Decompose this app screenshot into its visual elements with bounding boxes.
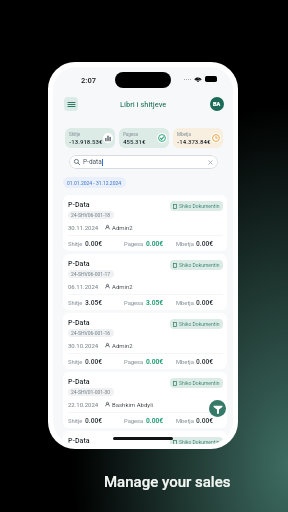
staticText: Pagesa bbox=[124, 300, 144, 307]
staticText: Pagesa bbox=[124, 359, 144, 366]
staticText: Shiko Dokumentin bbox=[179, 321, 220, 327]
staticText: 2:07 bbox=[81, 76, 97, 85]
staticText: 30.10.2024 bbox=[68, 342, 99, 349]
staticText: 0.00€ bbox=[146, 240, 164, 248]
staticText: 24-SHV01-001-30 bbox=[71, 389, 111, 395]
staticText: Mbetja bbox=[176, 300, 194, 307]
button[interactable]: Shiko Dokumentin bbox=[170, 260, 223, 270]
staticText: P-Data bbox=[68, 260, 90, 268]
staticText: 24-SHV06-001-17 bbox=[71, 271, 111, 277]
button[interactable]: Profile bbox=[210, 97, 224, 111]
staticText: 3.05€ bbox=[85, 299, 103, 307]
staticText: Shitje bbox=[68, 418, 83, 425]
button[interactable]: P-Data bbox=[63, 254, 227, 310]
staticText: Pagesa bbox=[124, 241, 144, 248]
button[interactable]: P-Data bbox=[63, 372, 227, 428]
staticText: Manage your sales bbox=[104, 473, 231, 491]
staticText: Shiko Dokumentin bbox=[179, 439, 220, 444]
staticText: Admin2 bbox=[112, 342, 133, 349]
staticText: 0.00€ bbox=[196, 240, 214, 248]
staticText: Mbetja bbox=[176, 359, 194, 366]
button[interactable]: P-Data bbox=[63, 431, 227, 444]
staticText: 0.00€ bbox=[85, 240, 103, 248]
button[interactable]: 01.01.2024 - 31.12.2024 bbox=[63, 177, 126, 188]
staticText: BA bbox=[213, 101, 221, 107]
staticText: 0.00€ bbox=[196, 417, 214, 425]
staticText: Mbetja bbox=[176, 241, 194, 248]
staticText: Libri i shitjeve bbox=[120, 100, 167, 109]
staticText: Shiko Dokumentin bbox=[179, 380, 220, 386]
staticText: 06.11.2024 bbox=[68, 283, 99, 290]
staticText: 01.01.2024 - 31.12.2024 bbox=[67, 180, 122, 186]
staticText: 22.10.2024 bbox=[68, 401, 99, 408]
button[interactable]: Mbetja bbox=[173, 128, 223, 148]
button[interactable]: Shiko Dokumentin bbox=[170, 378, 223, 388]
button[interactable]: Shitje bbox=[65, 128, 115, 148]
staticText: 0.00€ bbox=[196, 299, 214, 307]
staticText: P-Data bbox=[68, 437, 90, 444]
button[interactable]: Menu bbox=[64, 97, 78, 111]
staticText: P-Data bbox=[68, 201, 90, 209]
staticText: Mbetja bbox=[176, 418, 194, 425]
staticText: 0.00€ bbox=[196, 358, 214, 366]
button[interactable]: P-Data bbox=[63, 195, 227, 251]
button[interactable]: Shiko Dokumentin bbox=[170, 437, 223, 444]
staticText: Shitje bbox=[68, 359, 83, 366]
staticText: 3.05€ bbox=[146, 299, 164, 307]
button[interactable]: Shiko Dokumentin bbox=[170, 201, 223, 211]
staticText: Admin2 bbox=[112, 224, 133, 231]
staticText: Bashkim Abdyli bbox=[112, 401, 154, 408]
button[interactable]: Shiko Dokumentin bbox=[170, 319, 223, 329]
staticText: Mbetja bbox=[177, 132, 191, 137]
staticText: -14.373.84€ bbox=[177, 138, 211, 145]
staticText: 455.31€ bbox=[123, 138, 146, 145]
staticText: P-Data bbox=[68, 319, 90, 327]
button[interactable]: Pagesa bbox=[119, 128, 169, 148]
staticText: P-data bbox=[83, 158, 102, 166]
staticText: Pagesa bbox=[124, 418, 144, 425]
staticText: 30.11.2024 bbox=[68, 224, 99, 231]
staticText: Shitje bbox=[68, 300, 83, 307]
staticText: Shitje bbox=[69, 132, 81, 137]
staticText: 0.00€ bbox=[85, 358, 103, 366]
button[interactable]: Filter bbox=[209, 400, 226, 417]
staticText: 0.00€ bbox=[146, 417, 164, 425]
staticText: Admin2 bbox=[112, 283, 133, 290]
staticText: 24-SHV06-001-16 bbox=[71, 330, 111, 336]
staticText: Shiko Dokumentin bbox=[179, 203, 220, 209]
staticText: Shiko Dokumentin bbox=[179, 262, 220, 268]
staticText: 24-SHV06-001-18 bbox=[71, 212, 111, 218]
staticText: P-Data bbox=[68, 378, 90, 386]
staticText: 0.00€ bbox=[85, 417, 103, 425]
staticText: Pagesa bbox=[123, 132, 138, 137]
staticText: 0.00€ bbox=[146, 358, 164, 366]
button[interactable]: P-Data bbox=[63, 313, 227, 369]
staticText: -13.918.53€ bbox=[69, 138, 103, 145]
staticText: Shitje bbox=[68, 241, 83, 248]
button[interactable]: P-data bbox=[69, 155, 218, 169]
